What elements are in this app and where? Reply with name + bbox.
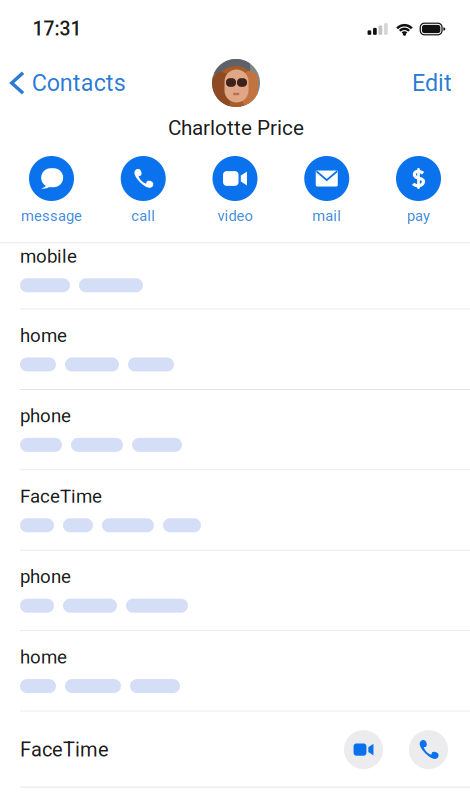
staticText: mail xyxy=(312,207,341,225)
button[interactable]: mobile xyxy=(0,243,470,310)
staticText: video xyxy=(217,207,252,225)
staticText: message xyxy=(21,207,82,225)
button[interactable]: video xyxy=(197,155,273,228)
button[interactable]: Edit xyxy=(396,59,470,107)
button[interactable]: call xyxy=(105,155,181,228)
button[interactable]: message xyxy=(13,155,89,228)
button[interactable]: home xyxy=(0,631,470,712)
staticText: home xyxy=(20,325,67,346)
button[interactable]: phone xyxy=(0,390,470,470)
staticText: Edit xyxy=(412,69,452,97)
button[interactable]: pay xyxy=(380,155,456,228)
staticText: 17:31 xyxy=(32,18,81,40)
staticText: phone xyxy=(20,405,71,427)
staticText: pay xyxy=(407,207,430,225)
staticText: FaceTime xyxy=(20,738,109,761)
button[interactable]: FaceTime xyxy=(0,470,470,551)
staticText: Contacts xyxy=(32,69,126,97)
staticText: mobile xyxy=(20,245,77,267)
button[interactable]: home xyxy=(0,310,470,390)
staticText: phone xyxy=(20,566,71,588)
button[interactable]: mail xyxy=(289,155,365,228)
staticText: Charlotte Price xyxy=(168,116,304,140)
staticText: home xyxy=(20,646,67,668)
staticText: call xyxy=(131,207,155,225)
button[interactable]: Contacts xyxy=(0,59,134,107)
staticText: FaceTime xyxy=(20,485,102,507)
button[interactable]: FaceTime xyxy=(0,712,470,788)
button[interactable]: phone xyxy=(0,551,470,631)
